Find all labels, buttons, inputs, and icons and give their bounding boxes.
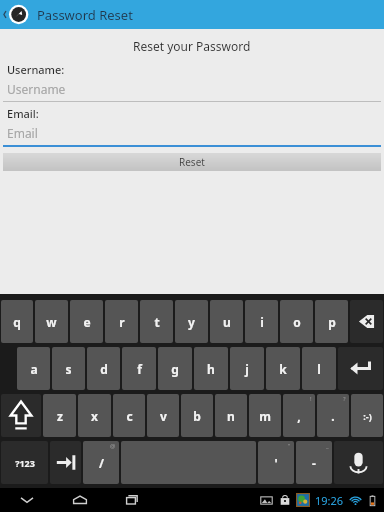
- button[interactable]: p: [315, 300, 348, 343]
- staticText: v: [160, 408, 167, 424]
- button[interactable]: i: [245, 300, 278, 343]
- button[interactable]: a: [17, 347, 50, 390]
- button[interactable]: Reset: [3, 153, 381, 171]
- staticText: u: [223, 314, 231, 330]
- staticText: /: [99, 455, 104, 471]
- button[interactable]: m: [249, 394, 281, 437]
- button[interactable]: Home: [67, 489, 93, 511]
- button[interactable]: Voice input: [334, 441, 383, 484]
- staticText: h: [207, 361, 215, 377]
- button[interactable]: n: [215, 394, 247, 437]
- button[interactable]: .: [317, 394, 349, 437]
- button[interactable]: g: [158, 347, 192, 390]
- staticText: -: [312, 455, 316, 471]
- staticText: i: [260, 314, 264, 330]
- staticText: r: [119, 314, 125, 330]
- button[interactable]: w: [35, 300, 68, 343]
- staticText: m: [259, 408, 271, 424]
- button[interactable]: f: [122, 347, 156, 390]
- button[interactable]: o: [280, 300, 313, 343]
- button[interactable]: Email: [3, 121, 381, 147]
- button[interactable]: ': [258, 441, 294, 484]
- staticText: .: [331, 408, 335, 424]
- button[interactable]: Navigate up: [3, 1, 30, 28]
- button[interactable]: z: [43, 394, 76, 437]
- button[interactable]: t: [140, 300, 173, 343]
- button[interactable]: ?123: [1, 441, 48, 484]
- button[interactable]: /: [83, 441, 119, 484]
- button[interactable]: -: [296, 441, 332, 484]
- staticText: n: [227, 408, 235, 424]
- staticText: s: [65, 361, 72, 377]
- staticText: w: [46, 314, 57, 330]
- staticText: y: [188, 314, 195, 330]
- staticText: e: [83, 314, 91, 330]
- staticText: @: [110, 442, 116, 450]
- staticText: Email:: [7, 106, 39, 121]
- staticText: q: [13, 314, 21, 330]
- staticText: !: [310, 395, 312, 403]
- button[interactable]: e: [70, 300, 103, 343]
- button[interactable]: Username: [3, 77, 381, 102]
- staticText: ': [274, 455, 278, 471]
- button[interactable]: Back: [14, 489, 40, 511]
- staticText: :-): [363, 410, 372, 422]
- button[interactable]: y: [175, 300, 208, 343]
- staticText: ,: [297, 408, 301, 424]
- button[interactable]: q: [1, 300, 33, 343]
- staticText: Username:: [7, 62, 65, 77]
- staticText: Reset: [179, 155, 205, 169]
- button[interactable]: r: [105, 300, 138, 343]
- staticText: o: [293, 314, 301, 330]
- button[interactable]: k: [266, 347, 300, 390]
- staticText: j: [245, 361, 249, 377]
- staticText: ": [288, 442, 291, 450]
- staticText: b: [193, 408, 201, 424]
- button[interactable]: h: [194, 347, 228, 390]
- button[interactable]: j: [230, 347, 264, 390]
- staticText: d: [100, 361, 108, 377]
- staticText: Email: [7, 125, 38, 141]
- staticText: ?123: [15, 457, 35, 469]
- button[interactable]: Recent apps: [120, 489, 146, 511]
- button[interactable]: Tab: [50, 441, 81, 484]
- button[interactable]: s: [52, 347, 85, 390]
- staticText: l: [317, 361, 321, 377]
- staticText: t: [154, 314, 160, 330]
- staticText: c: [126, 408, 133, 424]
- staticText: Username: [7, 81, 66, 97]
- staticText: k: [279, 361, 287, 377]
- button[interactable]: v: [147, 394, 179, 437]
- button[interactable]: l: [302, 347, 336, 390]
- button[interactable]: x: [78, 394, 111, 437]
- staticText: g: [171, 361, 179, 377]
- staticText: Password Reset: [37, 6, 133, 24]
- button[interactable]: Enter: [338, 347, 383, 390]
- button[interactable]: u: [210, 300, 243, 343]
- staticText: x: [91, 408, 98, 424]
- button[interactable]: ,: [283, 394, 315, 437]
- staticText: _: [326, 442, 329, 450]
- staticText: p: [328, 314, 336, 330]
- staticText: ?: [343, 395, 346, 403]
- button[interactable]: Backspace: [350, 300, 383, 343]
- staticText: a: [30, 361, 38, 377]
- staticText: f: [137, 361, 142, 377]
- button[interactable]: d: [87, 347, 120, 390]
- staticText: 19:26: [315, 493, 344, 508]
- button[interactable]: Shift: [1, 394, 41, 437]
- button[interactable]: :-): [351, 394, 383, 437]
- staticText: Reset your Password: [133, 38, 251, 54]
- button[interactable]: c: [113, 394, 145, 437]
- staticText: z: [57, 408, 63, 424]
- button[interactable]: b: [181, 394, 213, 437]
